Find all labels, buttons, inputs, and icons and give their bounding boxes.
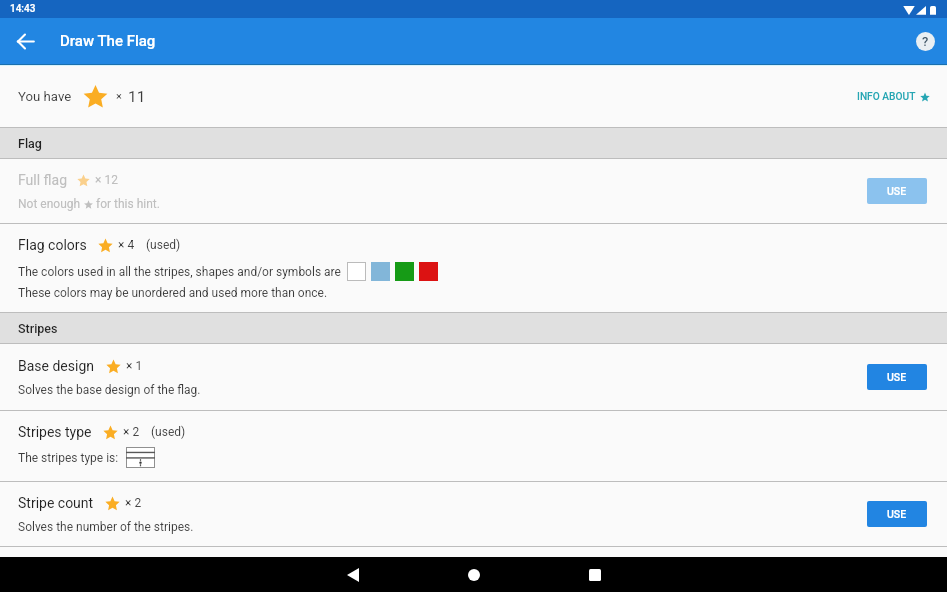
staticText: × 2 bbox=[125, 496, 142, 510]
staticText: × 4 bbox=[118, 238, 135, 252]
staticText: × 1 bbox=[126, 359, 143, 373]
button[interactable]: Help bbox=[908, 24, 942, 58]
staticText: Solves the base design of the flag. bbox=[18, 383, 201, 397]
staticText: × 2 bbox=[123, 425, 140, 439]
staticText: The colors used in all the stripes, shap… bbox=[18, 265, 341, 279]
staticText: Stripes type bbox=[18, 424, 92, 440]
staticText: ? bbox=[922, 34, 929, 49]
staticText: Draw The Flag bbox=[60, 32, 156, 50]
staticText: Not enough bbox=[18, 197, 81, 211]
button[interactable]: Home bbox=[413, 557, 534, 592]
staticText: USE bbox=[887, 185, 907, 197]
staticText: You have bbox=[18, 89, 72, 104]
staticText: 14:43 bbox=[10, 3, 36, 15]
staticText: Full flag bbox=[18, 172, 68, 188]
button[interactable]: Recents bbox=[534, 557, 655, 592]
button[interactable]: INFO ABOUT bbox=[857, 84, 930, 110]
staticText: for this hint. bbox=[96, 197, 160, 211]
staticText: 11 bbox=[128, 88, 146, 106]
button[interactable]: USE bbox=[867, 178, 927, 204]
staticText: The stripes type is: bbox=[18, 451, 119, 465]
staticText: These colors may be unordered and used m… bbox=[18, 286, 328, 300]
staticText: INFO ABOUT bbox=[857, 91, 916, 103]
button[interactable]: Back bbox=[292, 557, 413, 592]
staticText: Flag colors bbox=[18, 237, 87, 253]
button[interactable]: Back bbox=[0, 18, 50, 64]
staticText: USE bbox=[887, 508, 907, 520]
staticText: Base design bbox=[18, 358, 95, 374]
staticText: Solves the number of the stripes. bbox=[18, 520, 194, 534]
button[interactable]: USE bbox=[867, 501, 927, 527]
staticText: (used) bbox=[151, 425, 186, 439]
button[interactable]: USE bbox=[867, 364, 927, 390]
staticText: USE bbox=[887, 371, 907, 383]
staticText: × bbox=[116, 90, 122, 103]
staticText: × 12 bbox=[95, 173, 118, 187]
staticText: (used) bbox=[146, 238, 181, 252]
staticText: Flag bbox=[18, 136, 42, 151]
staticText: Stripe count bbox=[18, 495, 94, 511]
staticText: Stripes bbox=[18, 321, 58, 336]
